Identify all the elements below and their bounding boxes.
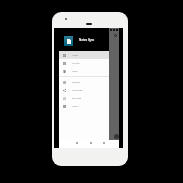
- button[interactable]: New note: [114, 134, 119, 139]
- button[interactable]: Notes: [59, 51, 109, 59]
- button[interactable]: Rate app: [59, 94, 109, 102]
- staticText: Notes Sync: [79, 38, 95, 42]
- staticText: Archive: [72, 62, 80, 65]
- staticText: Settings: [72, 81, 81, 84]
- button[interactable]: Archive: [59, 59, 109, 67]
- staticText: Rate app: [72, 97, 82, 100]
- staticText: About: [72, 105, 79, 108]
- staticText: Trash: [72, 70, 78, 73]
- staticText: Share app: [72, 89, 83, 92]
- button[interactable]: About: [59, 102, 109, 110]
- button[interactable]: Share app: [59, 86, 109, 94]
- button[interactable]: Sync: [114, 34, 117, 37]
- button[interactable]: Settings: [59, 78, 109, 86]
- staticText: Notes: [72, 54, 79, 57]
- button[interactable]: Trash: [59, 67, 109, 75]
